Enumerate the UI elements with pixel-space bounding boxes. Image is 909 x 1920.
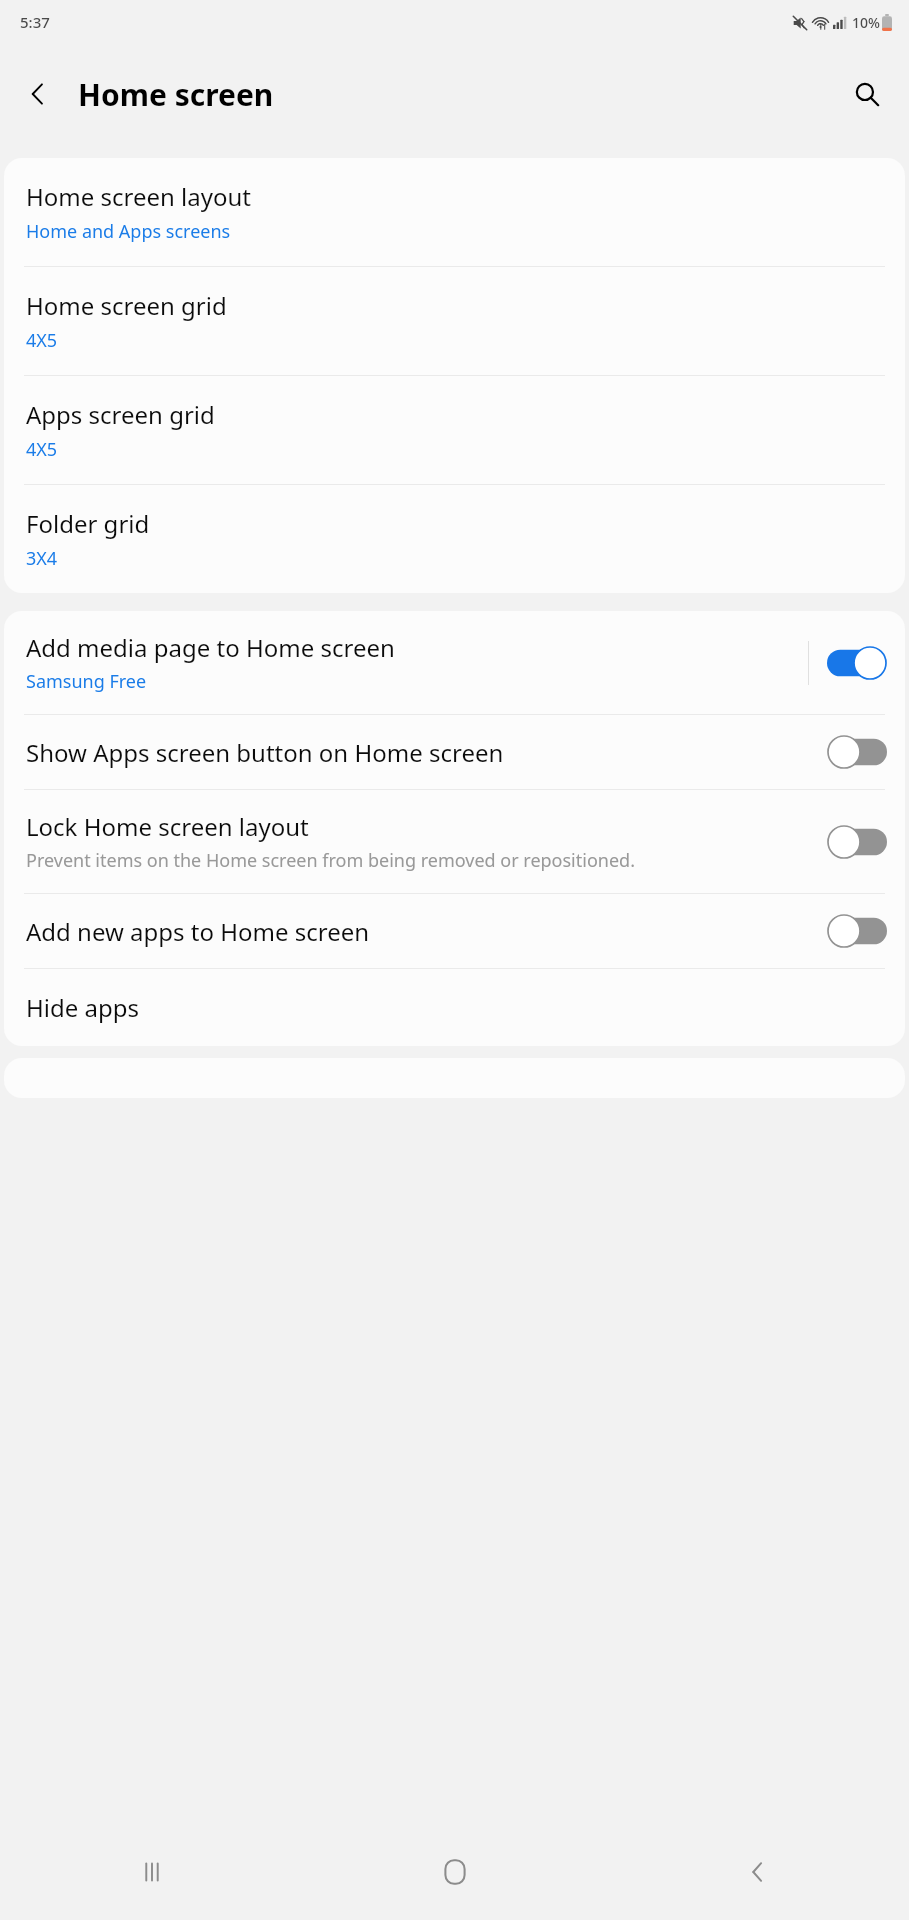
- staticText: 5:37: [20, 12, 50, 32]
- button[interactable]: Back: [606, 1824, 909, 1920]
- button[interactable]: Recents: [0, 1824, 303, 1920]
- staticText: Hide apps: [26, 991, 139, 1024]
- staticText: Prevent items on the Home screen from be…: [26, 848, 635, 873]
- staticText: Home screen grid: [26, 289, 227, 322]
- button[interactable]: Add media page to Home screen: [4, 611, 905, 714]
- button[interactable]: Home screen grid: [4, 267, 905, 375]
- staticText: Folder grid: [26, 507, 150, 540]
- button[interactable]: Apps screen grid: [4, 376, 905, 484]
- staticText: 3X4: [26, 546, 58, 571]
- button[interactable]: Hide apps: [4, 969, 905, 1046]
- button[interactable]: Off: [827, 914, 887, 948]
- button[interactable]: Search: [839, 66, 895, 122]
- button[interactable]: Off: [827, 825, 887, 859]
- staticText: 4X5: [26, 437, 58, 462]
- button[interactable]: Back: [10, 66, 66, 122]
- button[interactable]: Add new apps to Home screen: [4, 894, 905, 968]
- staticText: Apps screen grid: [26, 398, 215, 431]
- staticText: Show Apps screen button on Home screen: [26, 736, 504, 769]
- button[interactable]: Home screen layout: [4, 158, 905, 266]
- button[interactable]: Folder grid: [4, 485, 905, 593]
- button[interactable]: Show Apps screen button on Home screen: [4, 715, 905, 789]
- staticText: Home and Apps screens: [26, 219, 231, 244]
- staticText: 10%: [852, 13, 880, 32]
- button[interactable]: On: [827, 646, 887, 680]
- staticText: Home screen layout: [26, 180, 252, 213]
- staticText: Add media page to Home screen: [26, 631, 395, 664]
- staticText: Samsung Free: [26, 669, 147, 694]
- button[interactable]: Lock Home screen layout: [4, 790, 905, 893]
- button[interactable]: Off: [827, 735, 887, 769]
- staticText: Add new apps to Home screen: [26, 915, 370, 948]
- staticText: 4X5: [26, 328, 58, 353]
- staticText: Lock Home screen layout: [26, 810, 309, 843]
- button[interactable]: Home: [303, 1824, 606, 1920]
- staticText: Home screen: [78, 74, 274, 115]
